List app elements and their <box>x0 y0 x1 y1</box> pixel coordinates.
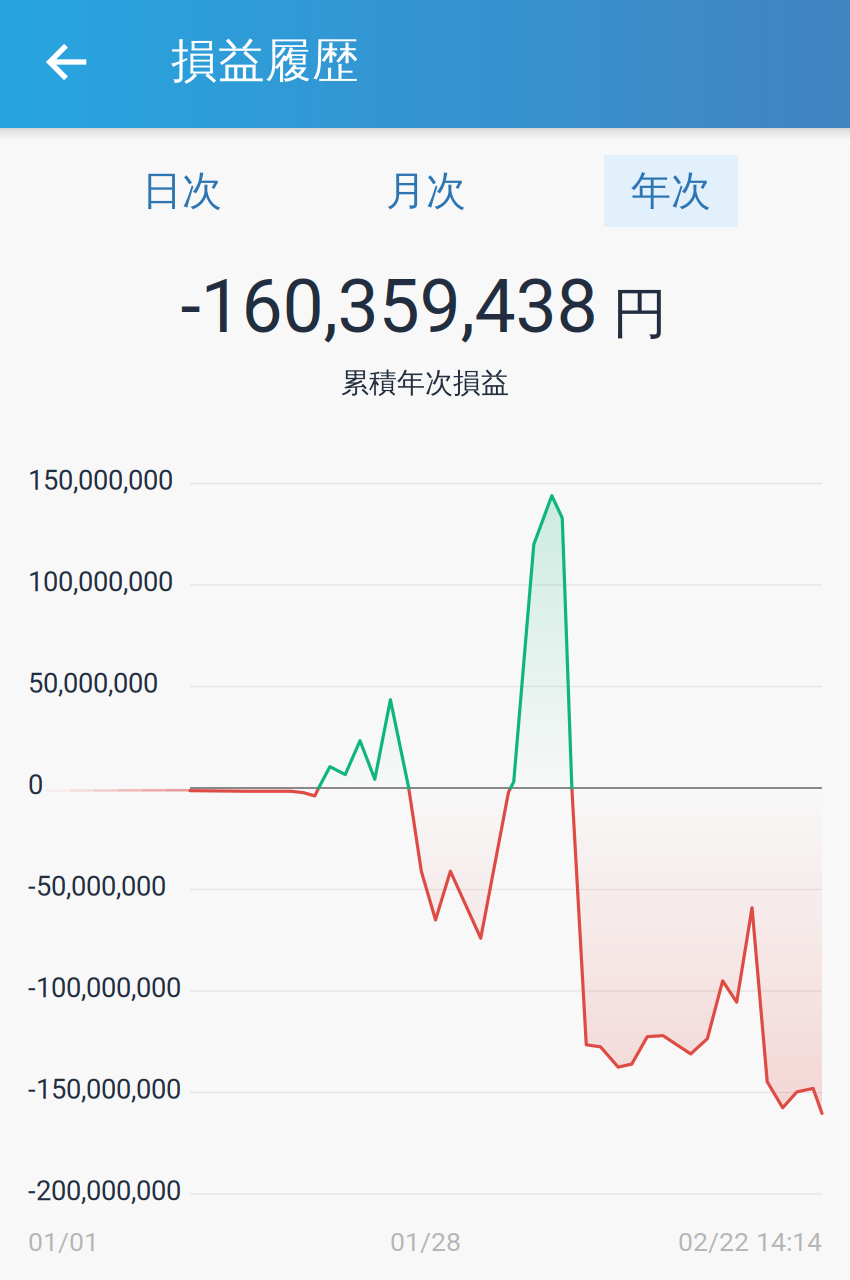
button[interactable]: Back <box>23 17 113 107</box>
button[interactable]: 日次 <box>115 155 249 227</box>
staticText: 01/28 <box>390 1226 461 1258</box>
button[interactable]: 年次 <box>604 155 738 227</box>
staticText: 累積年次損益 <box>341 365 509 401</box>
staticText: 年次 <box>631 166 711 216</box>
staticText: 50,000,000 <box>28 667 158 699</box>
staticText: 日次 <box>142 166 222 216</box>
staticText: -150,000,000 <box>28 1073 181 1105</box>
staticText: 月次 <box>386 166 466 216</box>
staticText: -160,359,438 <box>180 264 597 350</box>
button[interactable]: 月次 <box>359 155 493 227</box>
staticText: -50,000,000 <box>28 870 166 902</box>
staticText: 02/22 14:14 <box>678 1226 822 1258</box>
staticText: -200,000,000 <box>28 1175 181 1207</box>
staticText: 円 <box>612 279 667 348</box>
staticText: -100,000,000 <box>28 972 181 1004</box>
staticText: 100,000,000 <box>28 566 173 598</box>
staticText: 0 <box>28 769 43 801</box>
staticText: 01/01 <box>28 1226 99 1258</box>
staticText: 損益履歴 <box>171 32 359 90</box>
staticText: 150,000,000 <box>28 464 173 496</box>
